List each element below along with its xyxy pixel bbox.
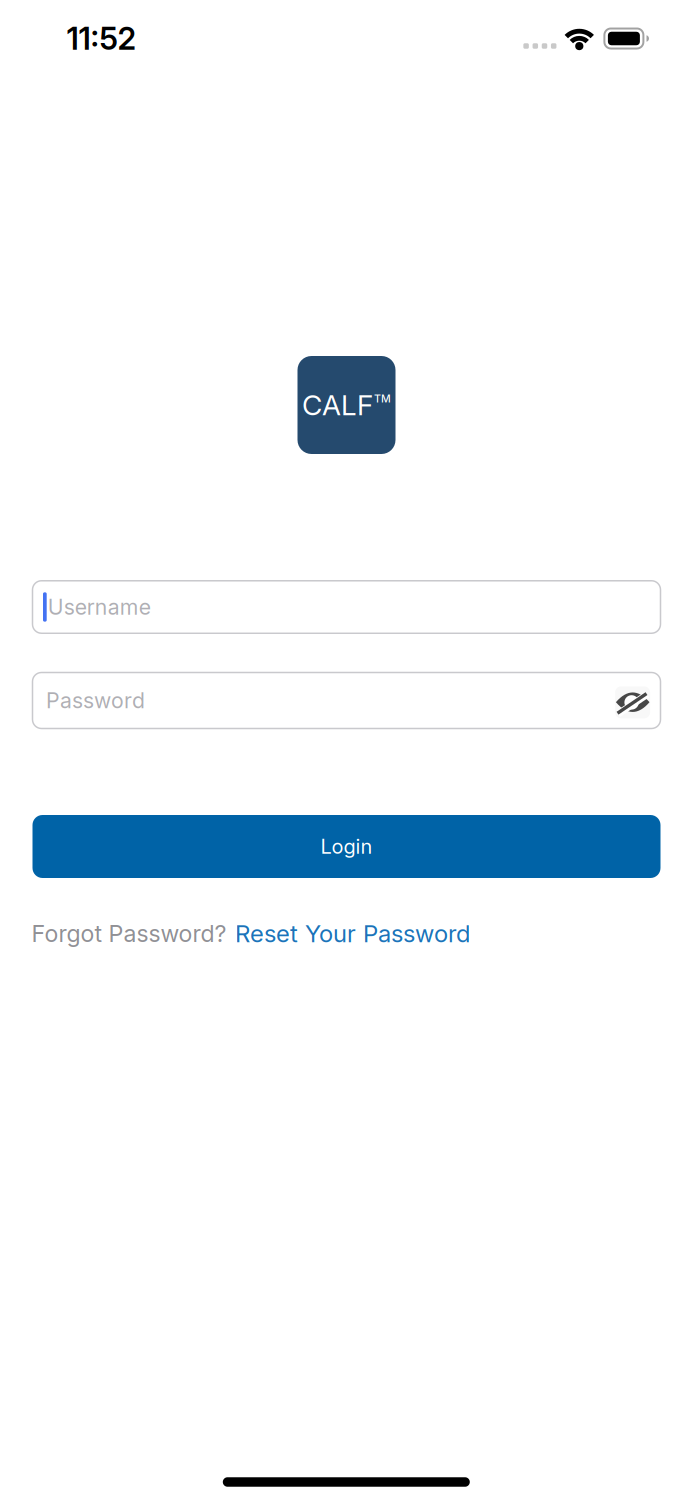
button[interactable]: Show password [611,680,655,724]
staticText: CALF [302,388,373,422]
staticText: Password [46,688,145,713]
staticText: TM [374,392,391,405]
staticText: Reset Your Password [235,919,470,948]
staticText: Login [320,834,372,859]
staticText: 11:52 [66,20,136,57]
button[interactable]: Username [32,581,660,633]
button[interactable]: Password [32,672,660,728]
button[interactable]: Login [32,815,660,878]
button[interactable]: Reset Your Password [235,919,470,948]
staticText: Username [48,594,151,620]
staticText: Forgot Password? [31,919,226,948]
